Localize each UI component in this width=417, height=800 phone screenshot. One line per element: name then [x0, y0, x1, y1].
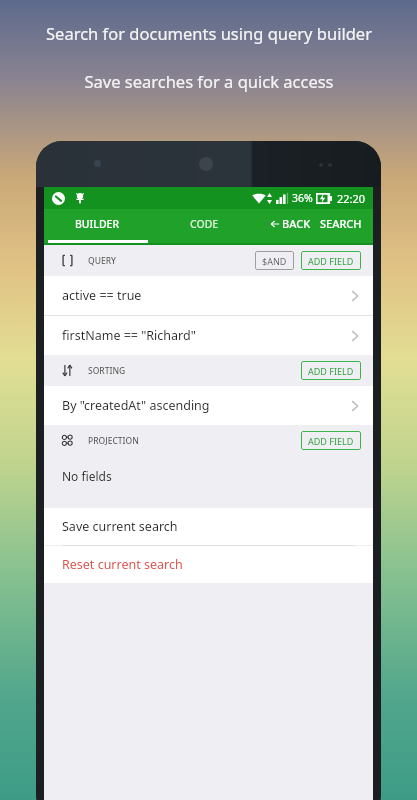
button[interactable]: BUILDER [44, 209, 151, 243]
staticText: BACK [282, 216, 311, 231]
button[interactable]: ADD FIELD [301, 431, 361, 450]
staticText: SEARCH [320, 216, 362, 231]
staticText: SORTING [88, 365, 126, 377]
staticText: 36% [292, 191, 313, 205]
staticText: CODE [190, 217, 219, 231]
staticText: PROJECTION [88, 435, 139, 447]
staticText: active == true [62, 287, 142, 304]
button[interactable]: SEARCH [320, 216, 362, 231]
staticText: ADD FIELD [308, 435, 354, 447]
staticText: Save searches for a quick access [84, 70, 334, 92]
button[interactable]: $AND [255, 251, 294, 270]
staticText: ADD FIELD [308, 255, 354, 267]
staticText: Reset current search [62, 556, 183, 573]
button[interactable]: By "createdAt" ascending [44, 386, 373, 425]
staticText: QUERY [88, 255, 117, 267]
staticText: Search for documents using query builder [46, 22, 372, 44]
staticText: By "createdAt" ascending [62, 397, 210, 414]
button[interactable]: ADD FIELD [301, 361, 361, 380]
button[interactable]: ADD FIELD [301, 251, 361, 270]
staticText: 22:20 [337, 191, 366, 206]
button[interactable]: BACK [270, 216, 311, 231]
button[interactable]: Reset current search [44, 546, 373, 583]
button[interactable]: firstName == "Richard" [44, 316, 373, 355]
staticText: $AND [262, 255, 287, 267]
button[interactable]: Save current search [44, 508, 373, 545]
staticText: firstName == "Richard" [62, 327, 196, 344]
button[interactable]: CODE [151, 209, 258, 243]
staticText: No fields [62, 468, 112, 484]
button[interactable]: active == true [44, 276, 373, 315]
staticText: Save current search [62, 518, 178, 535]
staticText: ADD FIELD [308, 365, 354, 377]
staticText: BUILDER [75, 217, 120, 231]
